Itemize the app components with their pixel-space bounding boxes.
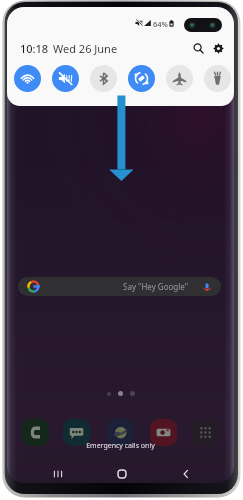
button[interactable]: Bluetooth xyxy=(90,65,117,92)
button[interactable]: Airplane mode xyxy=(166,65,193,92)
button[interactable]: Settings xyxy=(211,41,225,55)
button[interactable]: App xyxy=(150,419,177,446)
button[interactable]: Recents xyxy=(51,467,65,481)
staticText: 10:18 xyxy=(20,41,49,55)
button[interactable]: Say "Hey Google" xyxy=(18,277,221,296)
staticText: Wed 26 June xyxy=(53,41,118,55)
staticText: Emergency calls only xyxy=(7,441,234,451)
button[interactable]: Home xyxy=(115,467,129,481)
button[interactable]: Flashlight xyxy=(204,65,231,92)
button[interactable]: Sound xyxy=(52,65,79,92)
button[interactable]: Back xyxy=(179,467,193,481)
button[interactable]: App xyxy=(63,419,90,446)
button[interactable]: Search xyxy=(191,41,205,55)
staticText: 64% xyxy=(153,19,168,27)
button[interactable]: Auto rotate xyxy=(128,65,155,92)
staticText: Say "Hey Google" xyxy=(18,281,188,292)
button[interactable]: Wi-Fi xyxy=(14,65,41,92)
button[interactable]: App xyxy=(107,419,134,446)
button[interactable]: App xyxy=(192,419,219,446)
button[interactable]: App xyxy=(22,419,49,446)
